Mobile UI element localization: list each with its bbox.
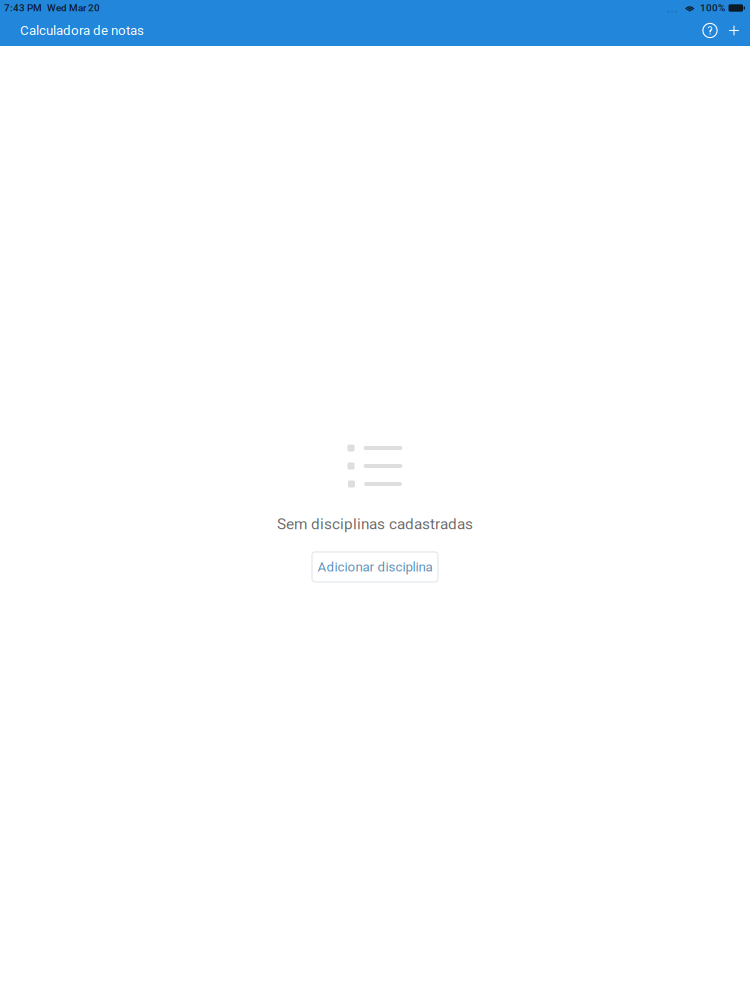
button[interactable]: Add [723,15,745,46]
staticText: Calculadora de notas [20,23,144,38]
staticText: Adicionar disciplina [317,559,432,575]
staticText: 7:43 PM [4,2,42,14]
button[interactable]: Adicionar disciplina [312,552,438,582]
staticText: Wed Mar 20 [47,2,100,14]
staticText: 100% [700,2,725,14]
button[interactable]: Help [697,15,723,46]
staticText: Sem disciplinas cadastradas [277,515,473,533]
